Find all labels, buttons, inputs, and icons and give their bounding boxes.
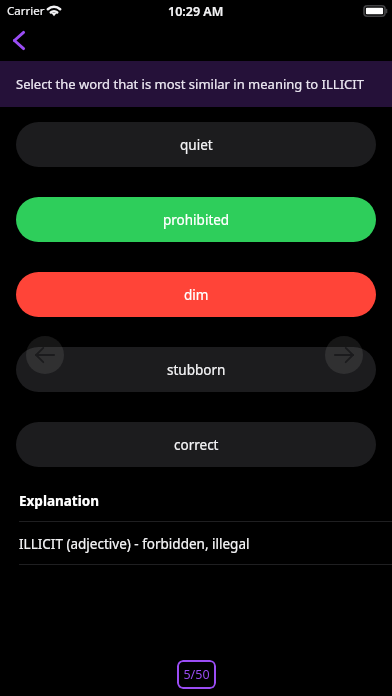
staticText: prohibited (163, 211, 230, 229)
button[interactable]: Back (1, 22, 37, 58)
button[interactable]: Next question (325, 336, 363, 374)
staticText: Carrier (7, 3, 45, 19)
button[interactable]: dim (16, 272, 376, 317)
staticText: ILLICIT (adjective) - forbidden, illegal (19, 535, 250, 553)
button[interactable]: Previous question (26, 336, 64, 374)
staticText: dim (184, 286, 209, 304)
button[interactable]: correct (16, 422, 376, 467)
staticText: stubborn (167, 361, 226, 379)
button[interactable]: quiet (16, 122, 376, 167)
staticText: Explanation (19, 492, 99, 510)
staticText: quiet (180, 136, 213, 154)
staticText: 5/50 (183, 666, 210, 683)
button[interactable]: stubborn (16, 347, 376, 392)
button[interactable]: prohibited (16, 197, 376, 242)
staticText: Select the word that is most similar in … (16, 75, 364, 93)
staticText: correct (174, 436, 219, 454)
staticText: 10:29 AM (168, 3, 224, 20)
button[interactable]: 5/50 (177, 660, 216, 689)
